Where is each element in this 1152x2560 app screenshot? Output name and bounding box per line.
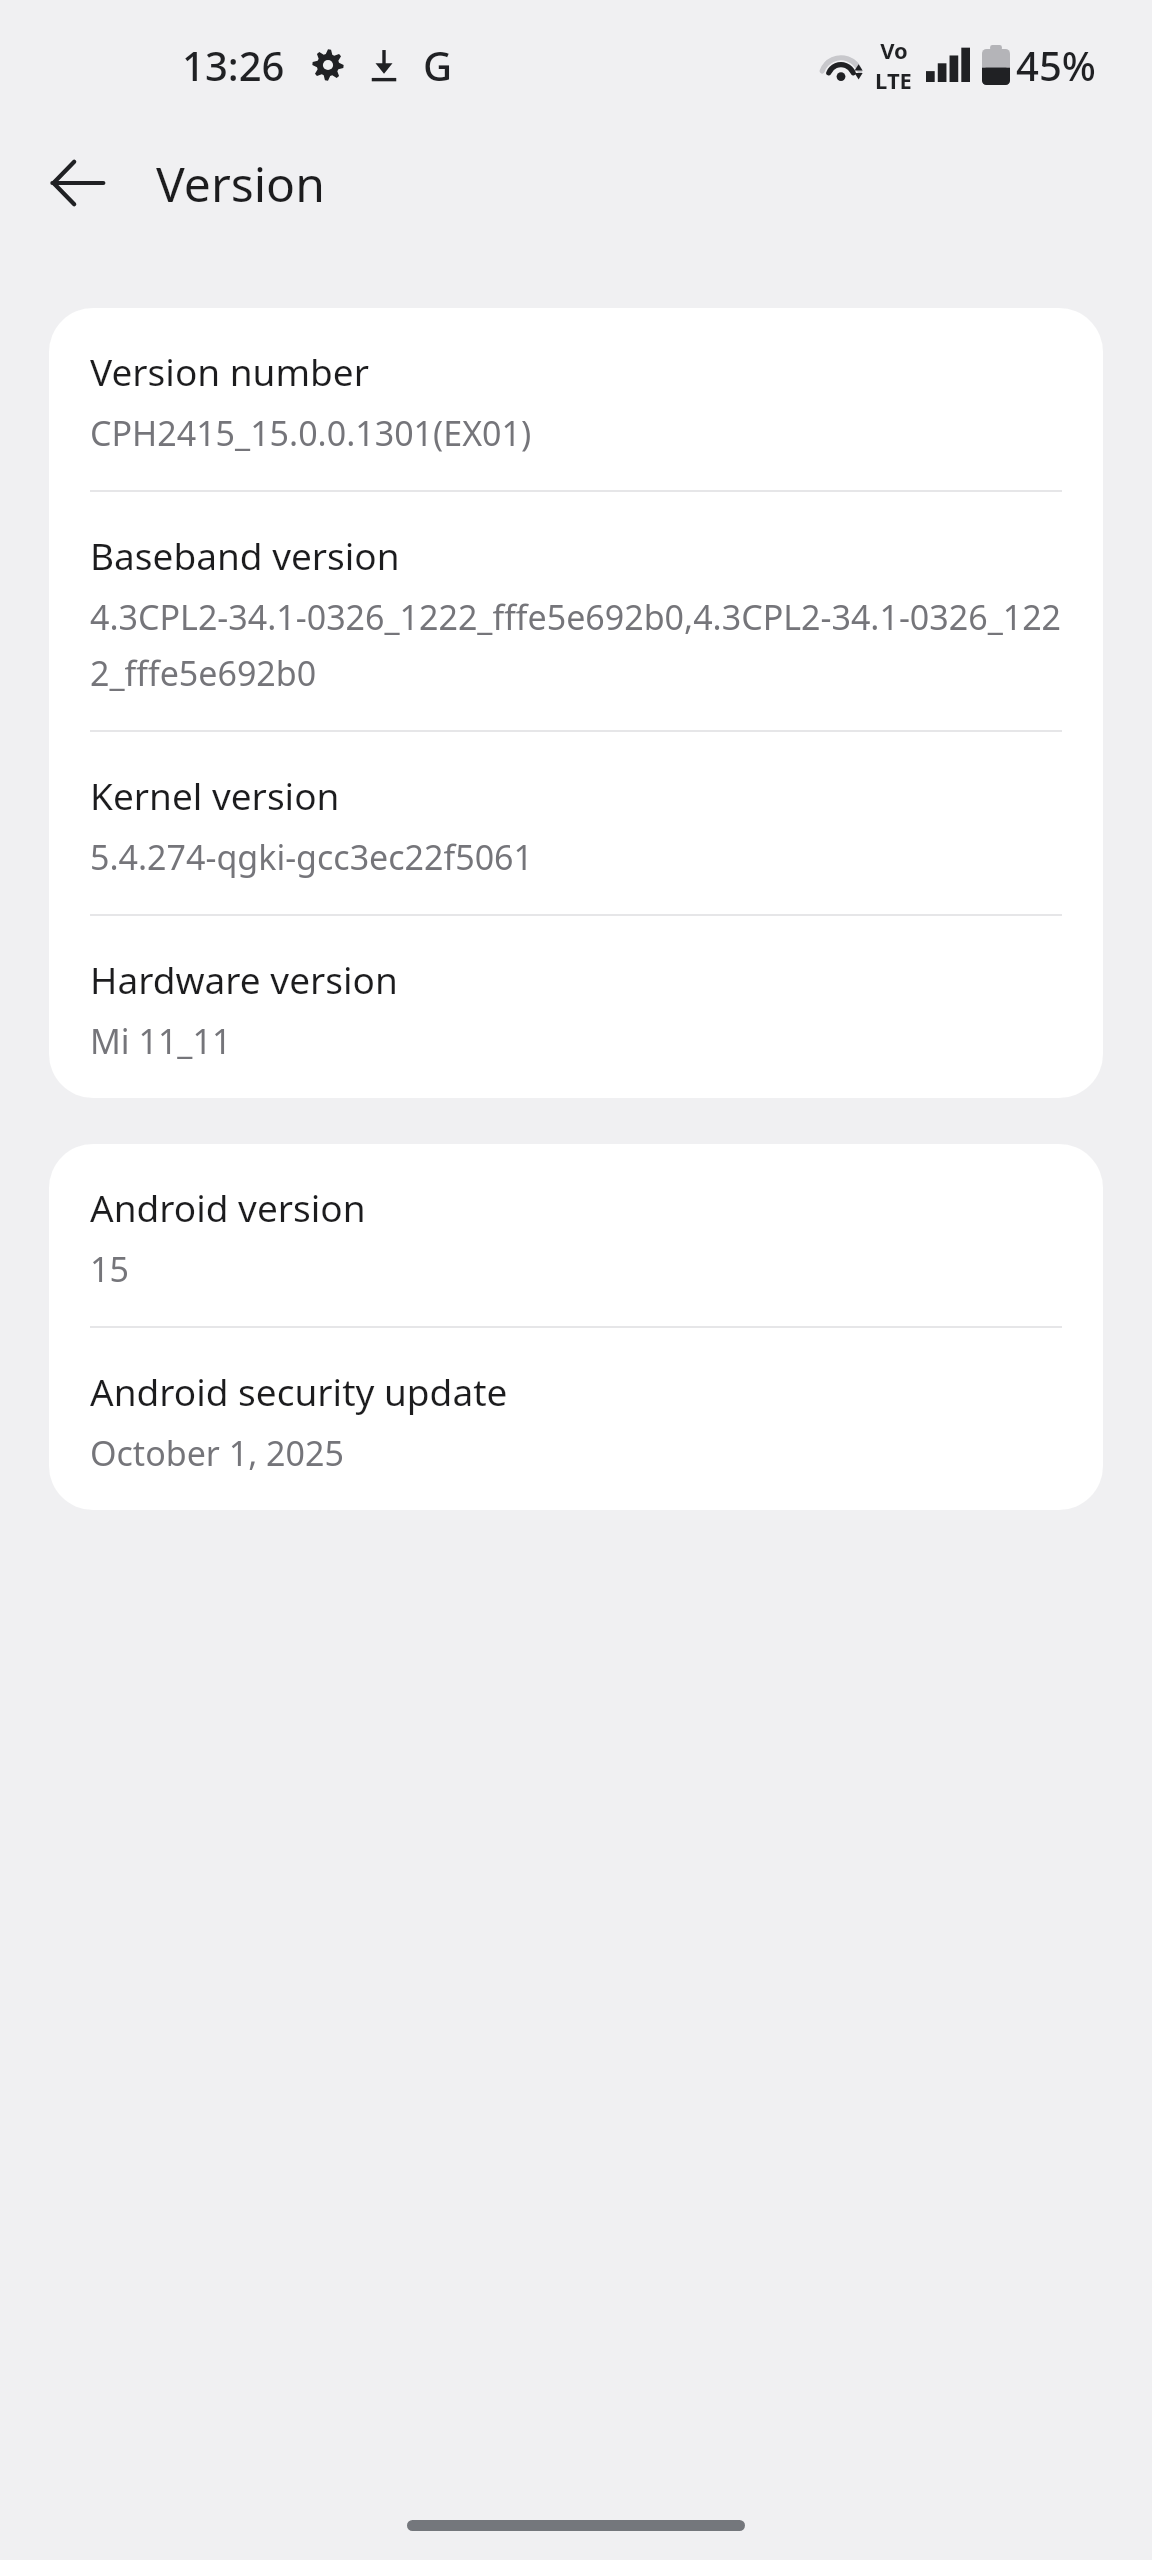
- button[interactable]: Back: [24, 130, 130, 236]
- staticText: Version: [156, 151, 325, 216]
- staticText: CPH2415_15.0.0.1301(EX01): [90, 410, 532, 456]
- staticText: Hardware version: [90, 954, 398, 1004]
- staticText: Vo: [880, 35, 908, 65]
- button[interactable]: Kernel version: [49, 732, 1103, 916]
- button[interactable]: Hardware version: [49, 916, 1103, 1098]
- staticText: Baseband version: [90, 530, 400, 580]
- button[interactable]: Baseband version: [49, 492, 1103, 732]
- staticText: 13:26: [182, 38, 285, 92]
- staticText: Mi 11_11: [90, 1018, 232, 1064]
- button[interactable]: Android version: [49, 1144, 1103, 1328]
- staticText: Version number: [90, 346, 369, 396]
- staticText: G: [423, 38, 453, 92]
- button[interactable]: Version number: [49, 308, 1103, 492]
- staticText: LTE: [875, 65, 912, 95]
- staticText: 45%: [1016, 38, 1096, 92]
- button[interactable]: Android security update: [49, 1328, 1103, 1510]
- staticText: 4.3CPL2-34.1-0326_1222_fffe5e692b0,4.3CP…: [90, 594, 1062, 696]
- staticText: 5.4.274-qgki-gcc3ec22f5061: [90, 834, 533, 880]
- staticText: 15: [90, 1246, 129, 1292]
- staticText: Kernel version: [90, 770, 340, 820]
- staticText: Android version: [90, 1182, 366, 1232]
- staticText: Android security update: [90, 1366, 508, 1416]
- staticText: October 1, 2025: [90, 1430, 344, 1476]
